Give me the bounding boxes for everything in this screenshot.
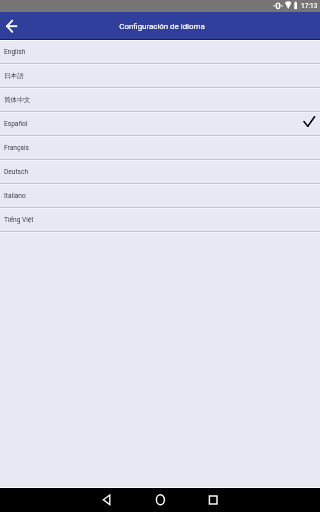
staticText: Français xyxy=(4,144,29,152)
button[interactable]: Italiano xyxy=(0,185,320,207)
button[interactable]: English xyxy=(0,41,320,63)
button[interactable]: Español xyxy=(0,113,320,135)
staticText: Deutsch xyxy=(4,168,29,176)
staticText: Italiano xyxy=(4,192,26,200)
staticText: 日本語 xyxy=(4,72,24,80)
staticText: English xyxy=(4,48,26,56)
button[interactable]: Back xyxy=(1,15,23,37)
button[interactable]: 简体中文 xyxy=(0,89,320,111)
button[interactable]: Tiếng Việt xyxy=(0,209,320,231)
button[interactable]: Recent apps xyxy=(187,488,240,512)
staticText: Tiếng Việt xyxy=(4,216,34,224)
staticText: 17:13 xyxy=(301,2,318,10)
button[interactable]: Deutsch xyxy=(0,161,320,183)
staticText: Configuración de idioma xyxy=(119,22,205,31)
button[interactable]: Français xyxy=(0,137,320,159)
staticText: Español xyxy=(4,120,28,128)
button[interactable]: Back xyxy=(81,488,134,512)
staticText: 简体中文 xyxy=(4,96,31,104)
button[interactable]: Home xyxy=(134,488,187,512)
button[interactable]: 日本語 xyxy=(0,65,320,87)
